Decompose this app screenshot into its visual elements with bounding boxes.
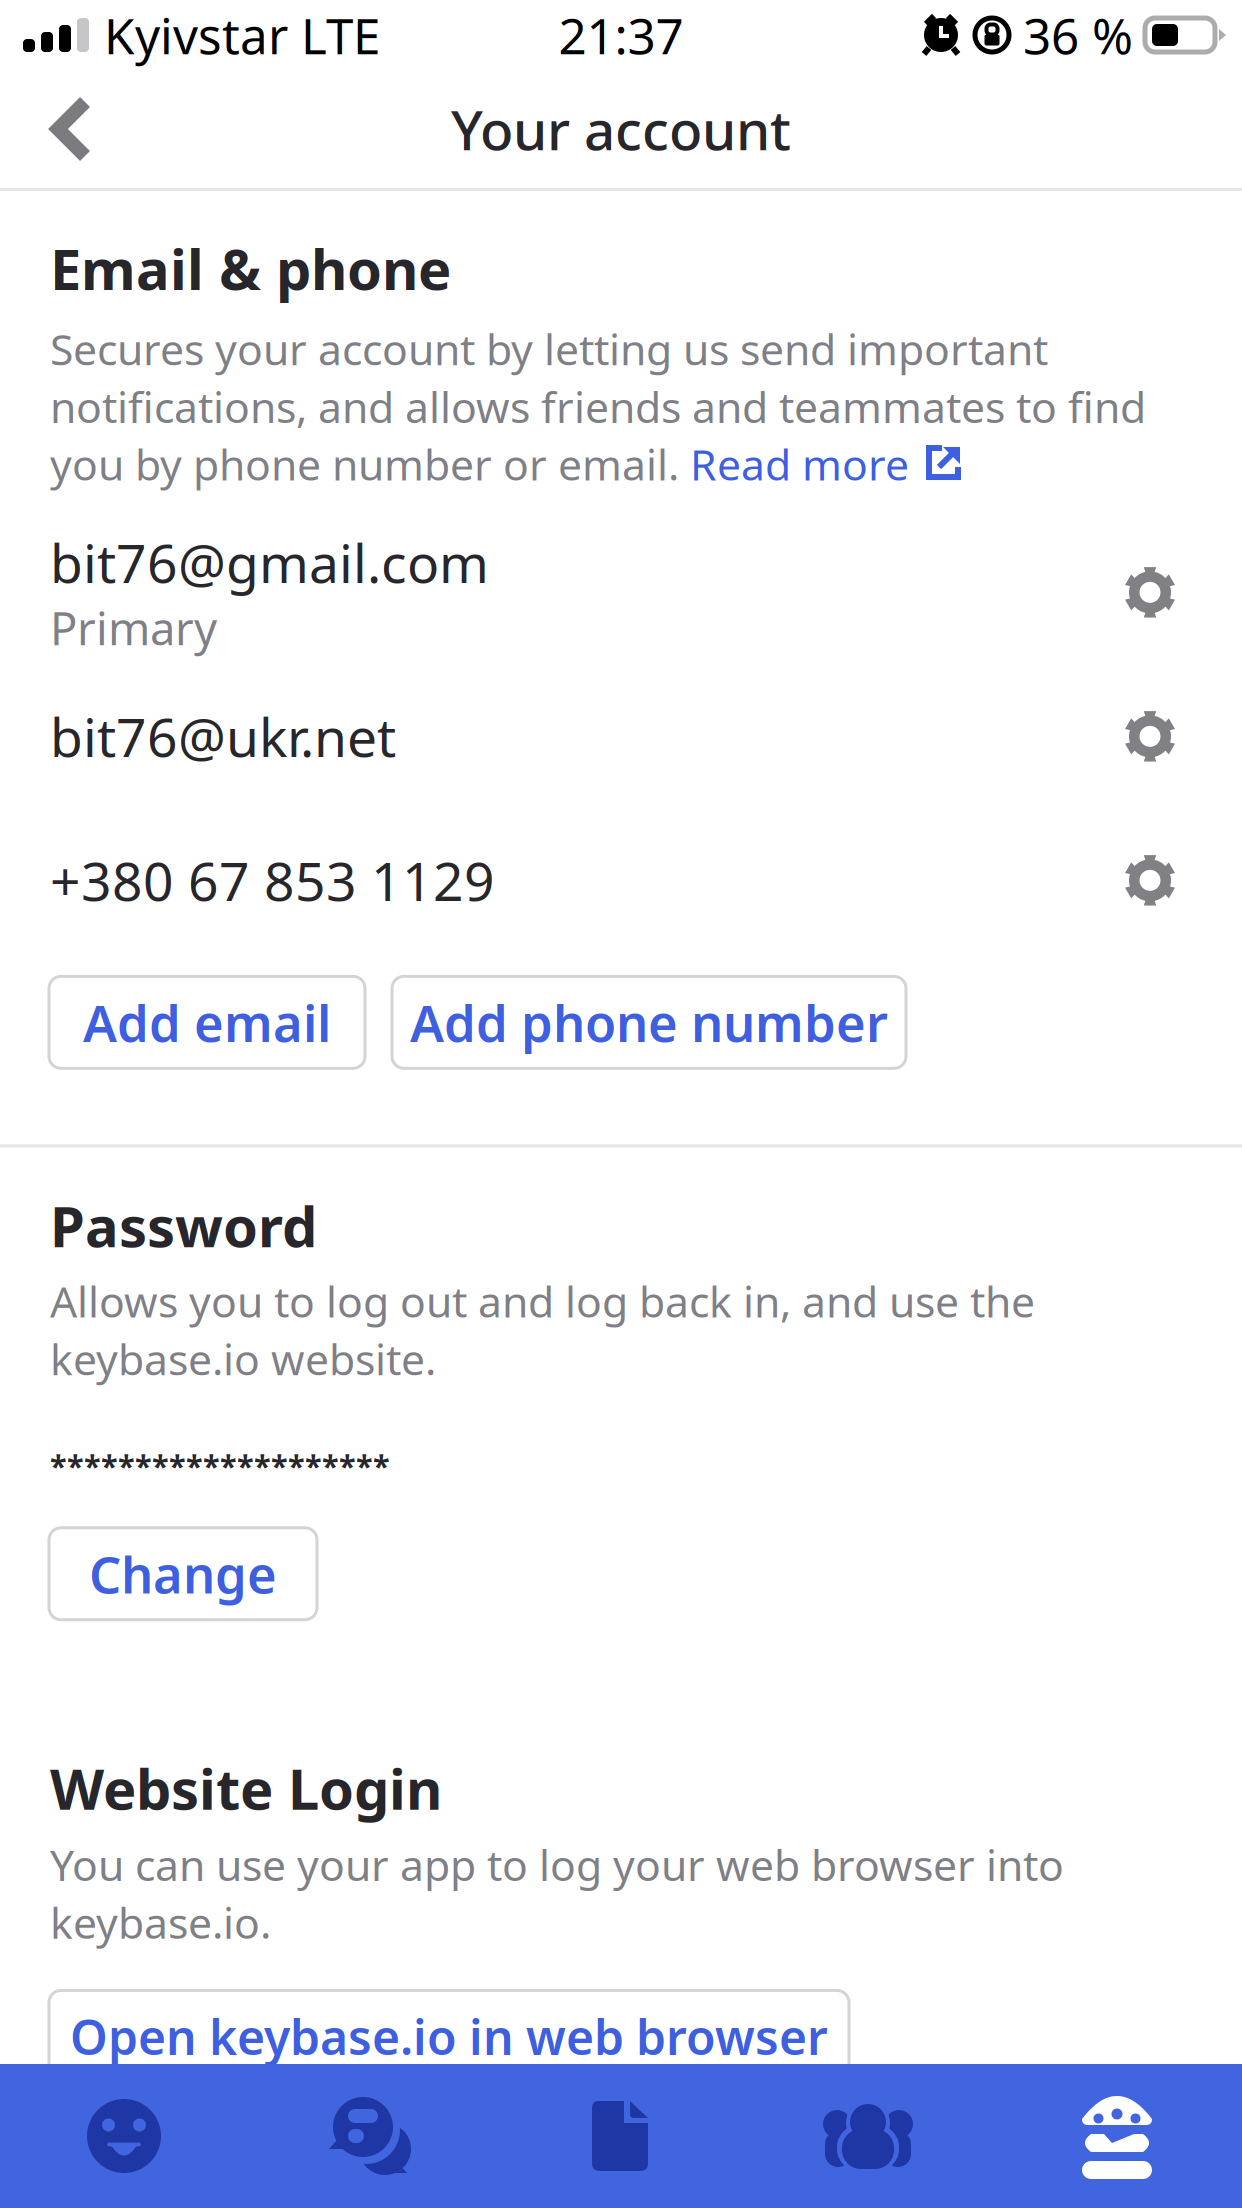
staticText: 21:37 — [558, 2, 683, 68]
staticText: you by phone number or email. — [50, 436, 690, 492]
button[interactable]: Add phone number — [392, 976, 906, 1068]
staticText: Password — [50, 1188, 317, 1263]
button[interactable]: +380 67 853 1129 — [0, 808, 1242, 952]
staticText: ******************** — [50, 1445, 390, 1486]
button[interactable]: bit76@ukr.net — [0, 664, 1242, 808]
staticText: Your account — [451, 93, 791, 165]
staticText: bit76@ukr.net — [50, 701, 396, 772]
button[interactable]: More — [992, 2064, 1242, 2208]
staticText: Website Login — [50, 1751, 442, 1825]
staticText: Add email — [83, 989, 331, 1056]
button[interactable]: Read more — [690, 436, 964, 492]
staticText: Primary — [50, 598, 217, 658]
button[interactable]: Open keybase.io in web browser — [49, 1990, 849, 2082]
button[interactable]: bit76@gmail.com — [0, 520, 1242, 664]
button[interactable]: Change — [49, 1528, 317, 1620]
staticText: Open keybase.io in web browser — [70, 2005, 828, 2068]
button[interactable]: Back — [0, 70, 132, 188]
staticText: keybase.io website. — [50, 1330, 436, 1387]
button[interactable]: Teams — [744, 2064, 992, 2208]
staticText: bit76@gmail.com — [50, 527, 489, 598]
staticText: Read more — [690, 436, 909, 492]
staticText: Email & phone — [50, 231, 451, 305]
button[interactable]: Chat — [248, 2064, 496, 2208]
staticText: Kyivstar LTE — [104, 2, 380, 68]
staticText: Add phone number — [410, 989, 888, 1056]
button[interactable]: Files — [496, 2064, 744, 2208]
staticText: Secures your account by letting us send … — [50, 320, 1048, 377]
staticText: 36 % — [1023, 2, 1133, 68]
staticText: notifications, and allows friends and te… — [50, 378, 1146, 435]
button[interactable]: People — [0, 2064, 248, 2208]
staticText: Allows you to log out and log back in, a… — [50, 1273, 1035, 1329]
staticText: +380 67 853 1129 — [50, 845, 495, 916]
button[interactable]: Add email — [49, 976, 365, 1068]
staticText: keybase.io. — [50, 1894, 271, 1950]
staticText: Change — [89, 1540, 277, 1607]
staticText: You can use your app to log your web bro… — [50, 1836, 1064, 1893]
